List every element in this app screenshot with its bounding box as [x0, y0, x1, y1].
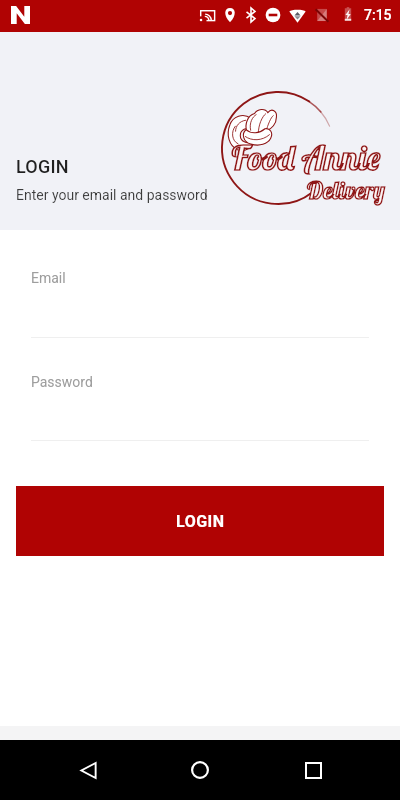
button[interactable]: Password: [31, 374, 369, 441]
staticText: LOGIN: [176, 512, 225, 531]
button[interactable]: LOGIN: [16, 486, 384, 556]
staticText: Password: [31, 374, 93, 390]
button[interactable]: Back: [63, 745, 113, 795]
staticText: Delivery: [306, 175, 385, 205]
button[interactable]: Recents: [288, 745, 338, 795]
staticText: Food Annie: [230, 136, 381, 179]
button[interactable]: Home: [175, 745, 225, 795]
staticText: Food Annie: [230, 136, 381, 179]
staticText: 7:15: [364, 7, 392, 23]
button[interactable]: Email: [31, 270, 369, 338]
staticText: Enter your email and password: [16, 187, 208, 203]
staticText: Email: [31, 270, 66, 286]
staticText: LOGIN: [16, 156, 69, 177]
staticText: Delivery: [306, 175, 385, 205]
